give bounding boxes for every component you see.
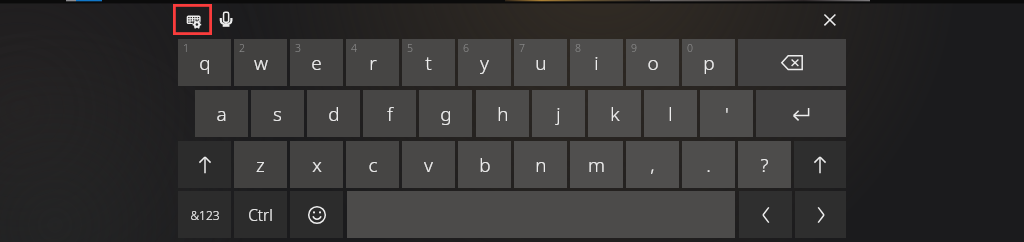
staticText: u — [535, 50, 547, 76]
staticText: t — [425, 50, 432, 76]
button[interactable]: 0 — [682, 39, 735, 86]
button[interactable]: Ctrl — [234, 191, 287, 238]
staticText: v — [424, 152, 433, 178]
button[interactable]: a — [195, 90, 248, 137]
button[interactable]: 7 — [514, 39, 567, 86]
button[interactable]: Backspace — [738, 39, 846, 86]
staticText: n — [535, 152, 547, 178]
staticText: p — [703, 50, 715, 76]
button[interactable]: n — [514, 141, 567, 188]
button[interactable]: v — [402, 141, 455, 188]
staticText: Ctrl — [248, 204, 273, 225]
staticText: 2 — [239, 41, 245, 55]
staticText: g — [440, 101, 452, 127]
button[interactable]: 9 — [626, 39, 679, 86]
button[interactable]: 2 — [234, 39, 287, 86]
staticText: 3 — [295, 41, 301, 55]
staticText: 4 — [351, 41, 357, 55]
button[interactable]: 1 — [178, 39, 231, 86]
button[interactable]: f — [363, 90, 416, 137]
staticText: x — [312, 152, 322, 178]
button[interactable]: 4 — [346, 39, 399, 86]
staticText: s — [273, 101, 282, 127]
staticText: r — [369, 50, 377, 76]
button[interactable]: Enter — [756, 90, 846, 137]
staticText: y — [480, 50, 489, 76]
button[interactable]: j — [532, 90, 585, 137]
button[interactable]: &123 — [178, 191, 231, 238]
staticText: w — [254, 50, 268, 76]
button[interactable]: 8 — [570, 39, 623, 86]
button[interactable]: ? — [738, 141, 791, 188]
staticText: l — [668, 101, 673, 127]
button[interactable]: g — [419, 90, 472, 137]
button[interactable]: h — [476, 90, 529, 137]
button[interactable]: 5 — [402, 39, 455, 86]
staticText: i — [594, 50, 599, 76]
staticText: q — [199, 50, 211, 76]
staticText: h — [497, 101, 509, 127]
staticText: 1 — [183, 41, 189, 55]
staticText: ' — [725, 101, 729, 127]
button[interactable]: . — [682, 141, 735, 188]
button[interactable]: b — [458, 141, 511, 188]
staticText: 0 — [687, 41, 693, 55]
staticText: 6 — [463, 41, 469, 55]
button[interactable]: , — [626, 141, 679, 188]
staticText: c — [368, 152, 378, 178]
staticText: . — [706, 152, 711, 178]
button[interactable]: s — [251, 90, 304, 137]
button[interactable]: Emoji — [290, 191, 343, 238]
staticText: 8 — [575, 41, 581, 55]
button[interactable]: Move cursor right — [795, 191, 846, 238]
button[interactable]: k — [588, 90, 641, 137]
button[interactable]: 6 — [458, 39, 511, 86]
staticText: d — [328, 101, 340, 127]
staticText: a — [216, 101, 227, 127]
button[interactable]: d — [307, 90, 360, 137]
staticText: &123 — [190, 207, 220, 223]
staticText: z — [256, 152, 265, 178]
staticText: 5 — [407, 41, 413, 55]
button[interactable]: 3 — [290, 39, 343, 86]
button[interactable]: Move cursor left — [739, 191, 792, 238]
staticText: e — [311, 50, 322, 76]
button[interactable]: c — [346, 141, 399, 188]
button[interactable]: z — [234, 141, 287, 188]
button[interactable]: Shift — [178, 141, 231, 188]
button[interactable]: Voice input — [216, 10, 236, 30]
staticText: b — [479, 152, 491, 178]
button[interactable]: m — [570, 141, 623, 188]
staticText: f — [387, 101, 393, 127]
staticText: k — [610, 101, 620, 127]
staticText: m — [588, 152, 605, 178]
button[interactable]: Close — [818, 8, 842, 32]
button[interactable]: Shift — [794, 141, 846, 188]
button[interactable]: ' — [700, 90, 753, 137]
staticText: 7 — [519, 41, 525, 55]
button[interactable]: x — [290, 141, 343, 188]
staticText: j — [556, 101, 561, 127]
staticText: 9 — [631, 41, 637, 55]
button[interactable]: l — [644, 90, 697, 137]
staticText: ? — [760, 152, 769, 178]
button[interactable]: Keyboard settings — [173, 4, 212, 35]
staticText: o — [647, 50, 659, 76]
staticText: , — [650, 152, 655, 178]
